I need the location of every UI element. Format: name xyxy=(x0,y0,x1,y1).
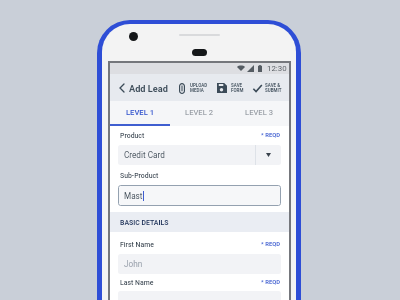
staticText: 12:30 xyxy=(267,64,287,73)
other: Save and submit xyxy=(253,84,262,93)
staticText: SUBMIT xyxy=(265,88,282,93)
staticText: MEDIA xyxy=(190,88,204,93)
staticText: BASIC DETAILS xyxy=(120,219,169,227)
button[interactable]: Mast xyxy=(118,185,281,206)
other: Save form xyxy=(217,83,227,93)
other: Upload media xyxy=(179,83,185,94)
button[interactable]: Credit Card xyxy=(118,145,281,165)
button[interactable]: Save and submit xyxy=(253,75,282,101)
staticText: LEVEL 3 xyxy=(245,108,273,117)
staticText: LEVEL 2 xyxy=(185,108,213,117)
staticText: FORM xyxy=(231,88,244,93)
staticText: SAVE xyxy=(231,83,243,88)
staticText: Add Lead xyxy=(129,83,168,94)
staticText: John xyxy=(124,259,143,269)
staticText: UPLOAD xyxy=(190,83,208,88)
staticText: * REQD xyxy=(261,132,281,139)
button[interactable]: LEVEL 1 xyxy=(110,101,169,124)
staticText: * REQD xyxy=(261,279,281,286)
other: Back xyxy=(120,84,124,92)
button[interactable]: Back xyxy=(110,75,168,101)
button[interactable]: LEVEL 2 xyxy=(169,101,229,124)
staticText: Sub-Product xyxy=(120,172,159,180)
staticText: Mast xyxy=(124,191,143,201)
button[interactable]: LEVEL 3 xyxy=(229,101,289,124)
staticText: First Name xyxy=(120,241,154,249)
staticText: SAVE & xyxy=(265,83,281,88)
button[interactable]: John xyxy=(118,254,281,274)
button[interactable]: Upload media xyxy=(179,75,208,101)
other: Open dropdown xyxy=(266,153,271,157)
staticText: Last Name xyxy=(120,279,154,287)
staticText: * REQD xyxy=(261,241,281,248)
button[interactable]: Save form xyxy=(217,75,244,101)
staticText: Product xyxy=(120,132,145,140)
staticText: Credit Card xyxy=(124,150,165,160)
staticText: LEVEL 1 xyxy=(126,108,154,117)
